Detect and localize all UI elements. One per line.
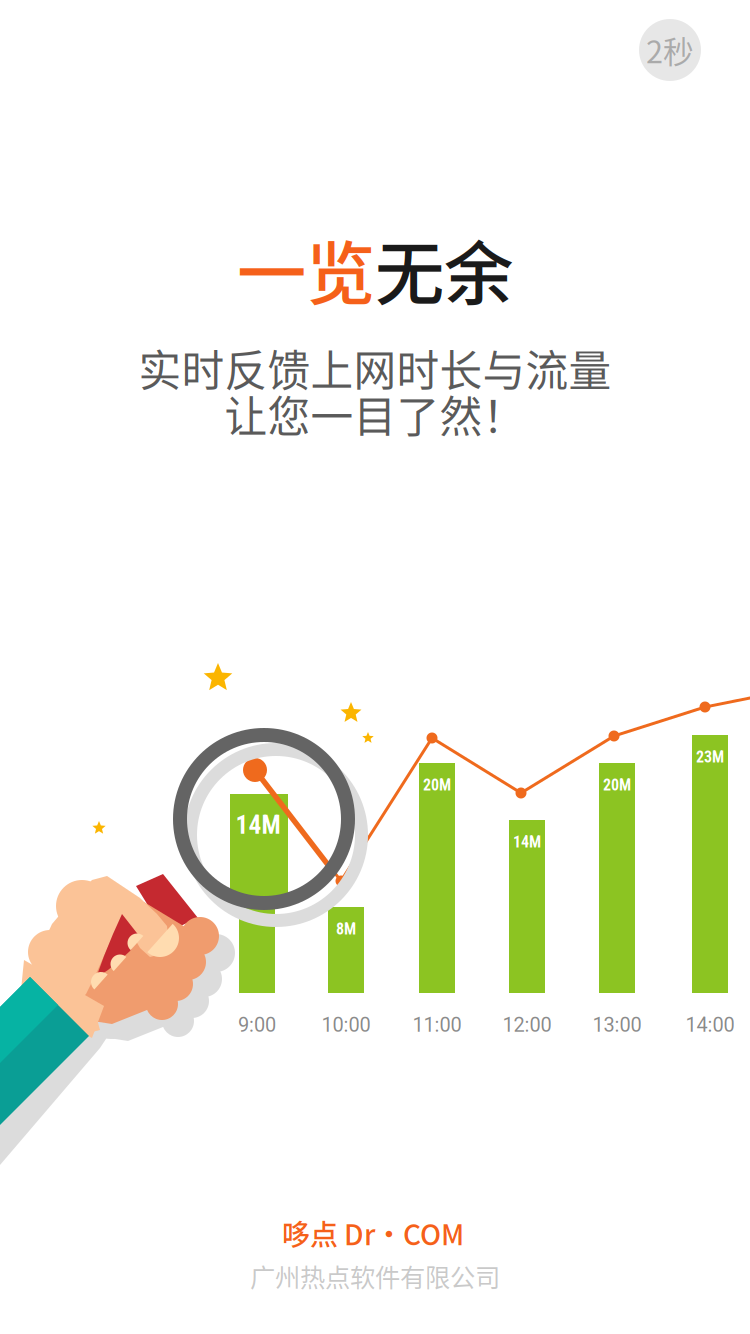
staticText: 23M bbox=[696, 748, 724, 766]
staticText: 实时反馈上网时长与流量 bbox=[138, 337, 611, 399]
staticText: 20M bbox=[423, 776, 451, 794]
staticText: 哆点 Dr·COM bbox=[282, 1213, 464, 1253]
staticText: 广州热点软件有限公司 bbox=[250, 1258, 500, 1294]
staticText: 12:00 bbox=[502, 1013, 551, 1037]
staticText: 20M bbox=[603, 776, 631, 794]
staticText: 让您一目了然！ bbox=[224, 383, 525, 445]
staticText: 14M bbox=[513, 833, 541, 851]
staticText: 10:00 bbox=[321, 1013, 370, 1037]
staticText: 2秒 bbox=[646, 28, 694, 72]
staticText: 14:00 bbox=[685, 1013, 734, 1037]
staticText: 无余 bbox=[375, 219, 513, 319]
staticText: 14M bbox=[235, 810, 280, 840]
staticText: 11:00 bbox=[412, 1013, 461, 1037]
staticText: 8M bbox=[336, 920, 356, 938]
staticText: 一览 bbox=[237, 219, 375, 319]
staticText: 13:00 bbox=[592, 1013, 641, 1037]
button[interactable]: 跳过 2秒 bbox=[639, 19, 701, 81]
staticText: 9:00 bbox=[238, 1013, 276, 1037]
